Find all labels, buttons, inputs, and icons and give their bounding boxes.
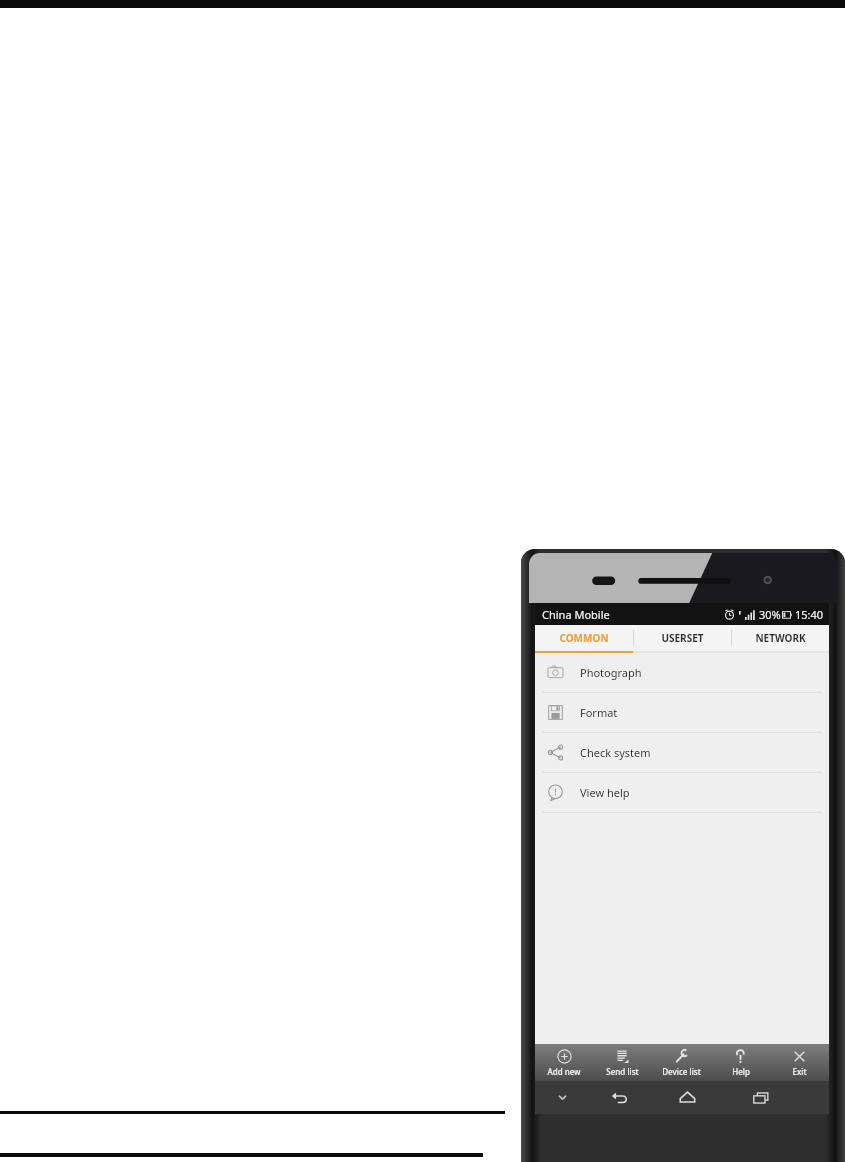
- staticText: Format: [580, 705, 618, 720]
- button[interactable]: Help: [711, 1044, 770, 1081]
- button[interactable]: Send list: [593, 1044, 652, 1081]
- button[interactable]: Device list: [652, 1044, 711, 1081]
- button[interactable]: Recent apps: [724, 1081, 798, 1114]
- button[interactable]: Format: [535, 693, 829, 733]
- staticText: COMMON: [559, 631, 609, 645]
- staticText: Check system: [580, 745, 651, 760]
- staticText: Exit: [792, 1066, 807, 1077]
- staticText: 15:40: [795, 607, 824, 622]
- button[interactable]: COMMON: [535, 625, 633, 651]
- button[interactable]: USERSET: [634, 625, 731, 651]
- staticText: Device list: [662, 1066, 701, 1077]
- button[interactable]: Hide navigation bar: [535, 1081, 589, 1114]
- button[interactable]: Check system: [535, 733, 829, 773]
- staticText: View help: [580, 785, 630, 800]
- staticText: Send list: [606, 1066, 639, 1077]
- staticText: 30%: [759, 607, 781, 622]
- staticText: China Mobile: [542, 607, 610, 622]
- staticText: Photograph: [580, 665, 642, 680]
- staticText: Add new: [547, 1066, 581, 1077]
- button[interactable]: NETWORK: [732, 625, 829, 651]
- button[interactable]: View help: [535, 773, 829, 813]
- staticText: NETWORK: [755, 631, 806, 645]
- button[interactable]: Exit: [770, 1044, 829, 1081]
- staticText: Help: [732, 1066, 750, 1077]
- button[interactable]: Photograph: [535, 653, 829, 693]
- button[interactable]: Add new: [535, 1044, 593, 1081]
- button[interactable]: Back: [589, 1081, 650, 1114]
- button[interactable]: Home: [650, 1081, 724, 1114]
- staticText: USERSET: [661, 631, 704, 645]
